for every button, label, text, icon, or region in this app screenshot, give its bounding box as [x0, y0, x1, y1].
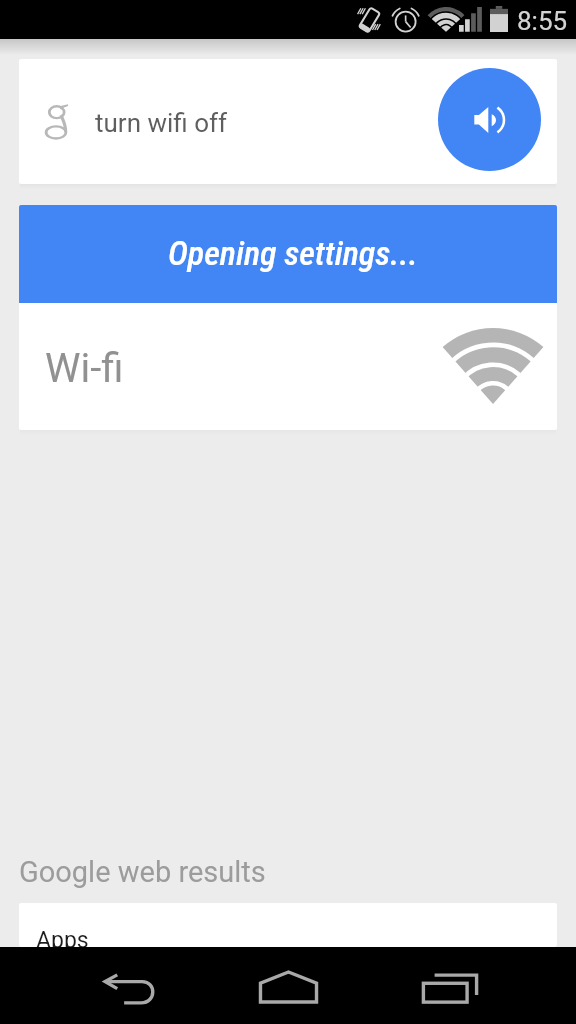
staticText: Apps	[36, 927, 89, 947]
button[interactable]: Wi-fi	[19, 303, 557, 430]
staticText: Opening settings...	[168, 233, 418, 273]
button[interactable]: Back	[74, 947, 184, 1024]
staticText: Google web results	[19, 855, 266, 889]
button[interactable]: Speak	[438, 68, 541, 171]
button[interactable]: Recent apps	[392, 947, 502, 1024]
staticText: Wi-fi	[45, 345, 124, 392]
staticText: turn wifi off	[95, 108, 228, 138]
staticText: 8:55	[517, 6, 568, 36]
button[interactable]: turn wifi off	[19, 59, 557, 184]
button[interactable]: Opening settings...	[19, 205, 557, 303]
button[interactable]: Home	[233, 947, 343, 1024]
button[interactable]: Apps	[19, 903, 557, 947]
